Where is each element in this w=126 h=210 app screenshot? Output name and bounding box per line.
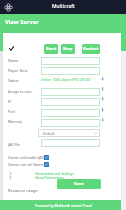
staticText: Stop	[63, 46, 73, 52]
button[interactable]: Show Permissions	[8, 175, 78, 180]
button[interactable]	[41, 88, 100, 96]
staticText: Status	[8, 78, 19, 83]
button[interactable]	[41, 67, 100, 75]
staticText: Owner can set Name	[8, 162, 44, 167]
button[interactable]: Save	[57, 179, 101, 189]
button[interactable]	[41, 109, 100, 117]
button[interactable]	[41, 119, 100, 127]
staticText: Name	[8, 58, 19, 63]
button[interactable]	[41, 139, 100, 147]
staticText: Assign to user	[8, 89, 32, 94]
staticText: Memory	[8, 119, 23, 124]
button[interactable]: Owner selectable JAR	[7, 154, 49, 161]
staticText: Player Slots	[8, 68, 28, 73]
staticText: IP	[8, 99, 12, 104]
button[interactable]	[41, 98, 100, 106]
staticText: Resource usage	[8, 188, 38, 193]
staticText: Online, 1000 players (PID: 45182)	[41, 78, 91, 82]
button[interactable]	[41, 57, 100, 65]
staticText: Start	[46, 46, 57, 52]
button[interactable]: Show Advanced Settings	[8, 171, 78, 176]
staticText: Port	[8, 109, 16, 114]
staticText: Save	[74, 181, 84, 187]
staticText: Restart	[83, 46, 99, 52]
staticText: Default	[43, 131, 55, 136]
button[interactable]: Start	[44, 44, 58, 54]
button[interactable]: Default	[38, 129, 100, 137]
staticText: Powered by Multicraft control Panel	[35, 203, 92, 208]
staticText: View Server	[5, 18, 39, 26]
staticText: Owner selectable JAR	[8, 155, 44, 160]
button[interactable]: Restart	[82, 44, 100, 54]
staticText: Multicraft	[52, 3, 75, 10]
button[interactable]: Owner can set Name	[7, 161, 49, 168]
staticText: JAR File	[8, 142, 21, 147]
staticText: Show Permissions	[35, 175, 64, 180]
button[interactable]: Stop	[61, 44, 75, 54]
staticText: Show Advanced Settings	[35, 171, 74, 176]
button[interactable]: Multicraft home	[3, 2, 13, 12]
